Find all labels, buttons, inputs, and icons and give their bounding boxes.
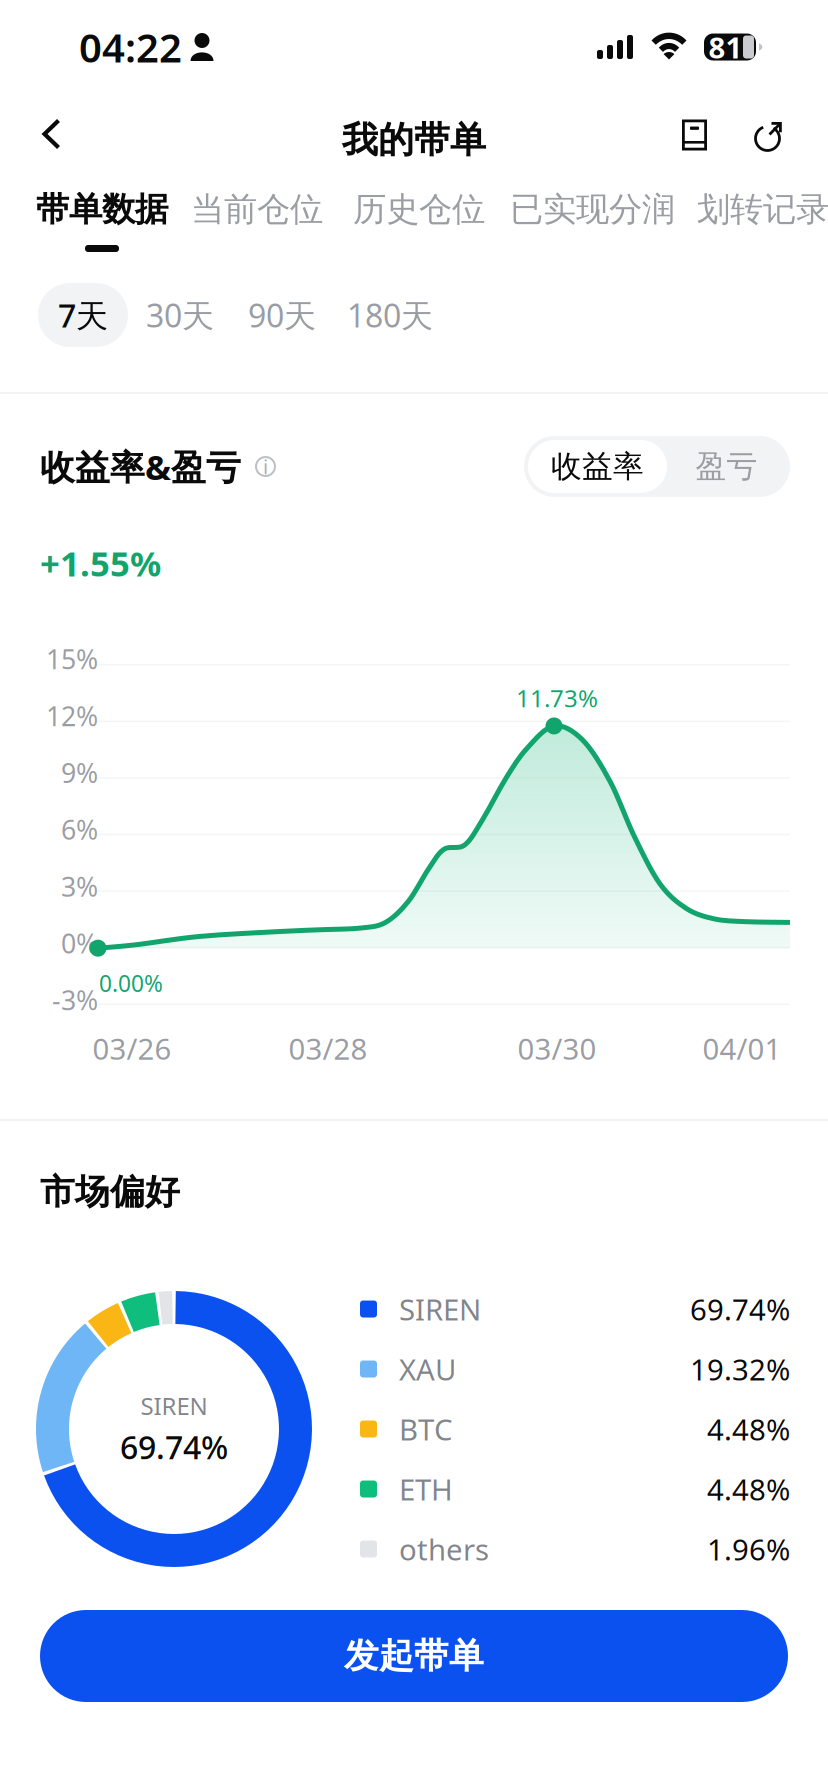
- button[interactable]: 180天: [334, 283, 446, 347]
- staticText: SIREN: [140, 1390, 207, 1422]
- staticText: 180天: [347, 294, 433, 336]
- staticText: 03/30: [517, 1029, 596, 1068]
- staticText: 69.74%: [690, 1289, 790, 1328]
- staticText: 69.74%: [120, 1426, 228, 1468]
- staticText: 收益率: [551, 448, 644, 485]
- staticText: ETH: [399, 1469, 453, 1508]
- staticText: 4.48%: [707, 1409, 790, 1448]
- staticText: BTC: [399, 1409, 453, 1448]
- staticText: -3%: [52, 982, 98, 1018]
- button[interactable]: 7天: [38, 283, 128, 347]
- staticText: 我的带单: [342, 118, 486, 162]
- staticText: 已实现分润: [510, 189, 675, 230]
- button[interactable]: 历史仓位: [353, 186, 485, 233]
- button[interactable]: 发起带单: [40, 1610, 788, 1702]
- staticText: 9%: [61, 755, 98, 790]
- staticText: 19.32%: [690, 1349, 790, 1388]
- staticText: 30天: [146, 294, 214, 336]
- button[interactable]: 已实现分润: [510, 186, 675, 233]
- staticText: i: [263, 453, 268, 480]
- staticText: 盈亏: [695, 448, 757, 485]
- staticText: 3%: [61, 869, 98, 904]
- button[interactable]: 收益率: [528, 440, 667, 493]
- button[interactable]: 带单数据: [36, 186, 168, 252]
- staticText: 4.48%: [707, 1469, 790, 1508]
- button[interactable]: Share: [731, 102, 828, 178]
- staticText: 0%: [61, 925, 98, 961]
- staticText: 划转记录: [697, 189, 828, 230]
- button[interactable]: Guide: [658, 102, 731, 177]
- staticText: 03/26: [92, 1029, 171, 1068]
- staticText: 发起带单: [344, 1635, 484, 1677]
- button[interactable]: 30天: [130, 283, 230, 347]
- staticText: SIREN: [399, 1289, 481, 1328]
- staticText: 81: [708, 27, 742, 66]
- staticText: 04:22: [79, 20, 182, 73]
- button[interactable]: 划转记录: [697, 186, 828, 233]
- staticText: 15%: [46, 641, 98, 677]
- button[interactable]: 当前仓位: [191, 186, 323, 233]
- staticText: 6%: [61, 812, 98, 847]
- button[interactable]: 盈亏: [667, 440, 786, 493]
- staticText: 90天: [248, 294, 316, 336]
- staticText: 7天: [58, 294, 108, 336]
- staticText: 11.73%: [516, 682, 598, 714]
- staticText: 1.96%: [707, 1529, 790, 1568]
- staticText: 12%: [46, 698, 98, 733]
- button[interactable]: 90天: [232, 283, 332, 347]
- staticText: +1.55%: [40, 540, 161, 586]
- staticText: 当前仓位: [191, 189, 323, 230]
- staticText: 带单数据: [36, 189, 168, 230]
- staticText: 市场偏好: [40, 1171, 180, 1213]
- staticText: XAU: [399, 1349, 456, 1388]
- button[interactable]: Back: [0, 102, 89, 177]
- staticText: 收益率&盈亏: [40, 443, 241, 489]
- staticText: 03/28: [288, 1029, 367, 1068]
- staticText: others: [399, 1529, 489, 1568]
- staticText: 历史仓位: [353, 189, 485, 230]
- staticText: 0.00%: [99, 968, 163, 998]
- staticText: 04/01: [702, 1029, 781, 1068]
